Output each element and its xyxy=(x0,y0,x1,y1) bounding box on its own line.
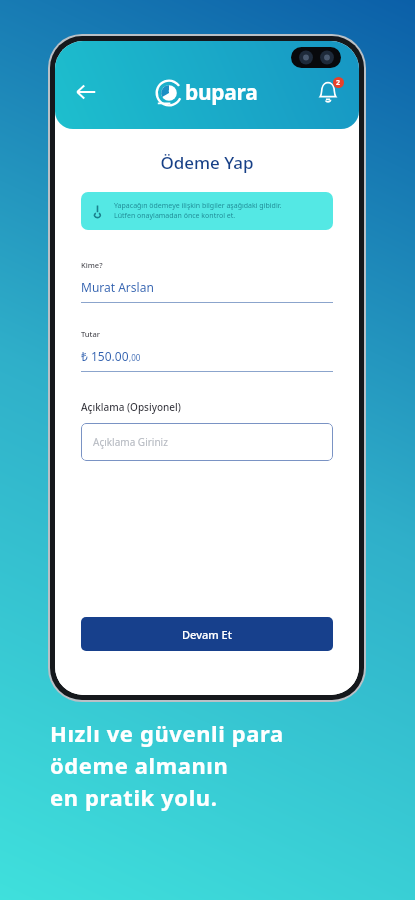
button[interactable]: Devam Et xyxy=(81,617,333,651)
button[interactable]: Back xyxy=(67,73,105,111)
staticText: Devam Et xyxy=(182,627,232,642)
button[interactable]: Notifications xyxy=(309,73,347,111)
button[interactable]: Murat Arslan xyxy=(81,279,333,303)
staticText: 2 xyxy=(336,78,341,88)
staticText: ödeme almanın xyxy=(50,750,229,780)
staticText: en pratik yolu. xyxy=(50,782,218,812)
staticText: Tutar xyxy=(81,329,100,339)
staticText: Yapacağın ödemeye ilişkin bilgiler aşağı… xyxy=(114,201,282,211)
staticText: Lütfen onaylamadan önce kontrol et. xyxy=(114,211,236,221)
staticText: Kime? xyxy=(81,260,103,270)
staticText: Ödeme Yap xyxy=(81,151,333,174)
staticText: ,00 xyxy=(129,352,141,363)
button[interactable]: ₺ 150.00 xyxy=(81,348,333,372)
staticText: bupara xyxy=(185,78,258,107)
staticText: Açıklama Giriniz xyxy=(93,435,168,449)
staticText: ₺ 150.00 xyxy=(81,348,129,364)
staticText: Murat Arslan xyxy=(81,279,154,295)
staticText: Açıklama (Opsiyonel) xyxy=(81,400,181,414)
staticText: Hızlı ve güvenli para xyxy=(50,718,284,748)
button[interactable]: Açıklama Giriniz xyxy=(81,423,333,461)
